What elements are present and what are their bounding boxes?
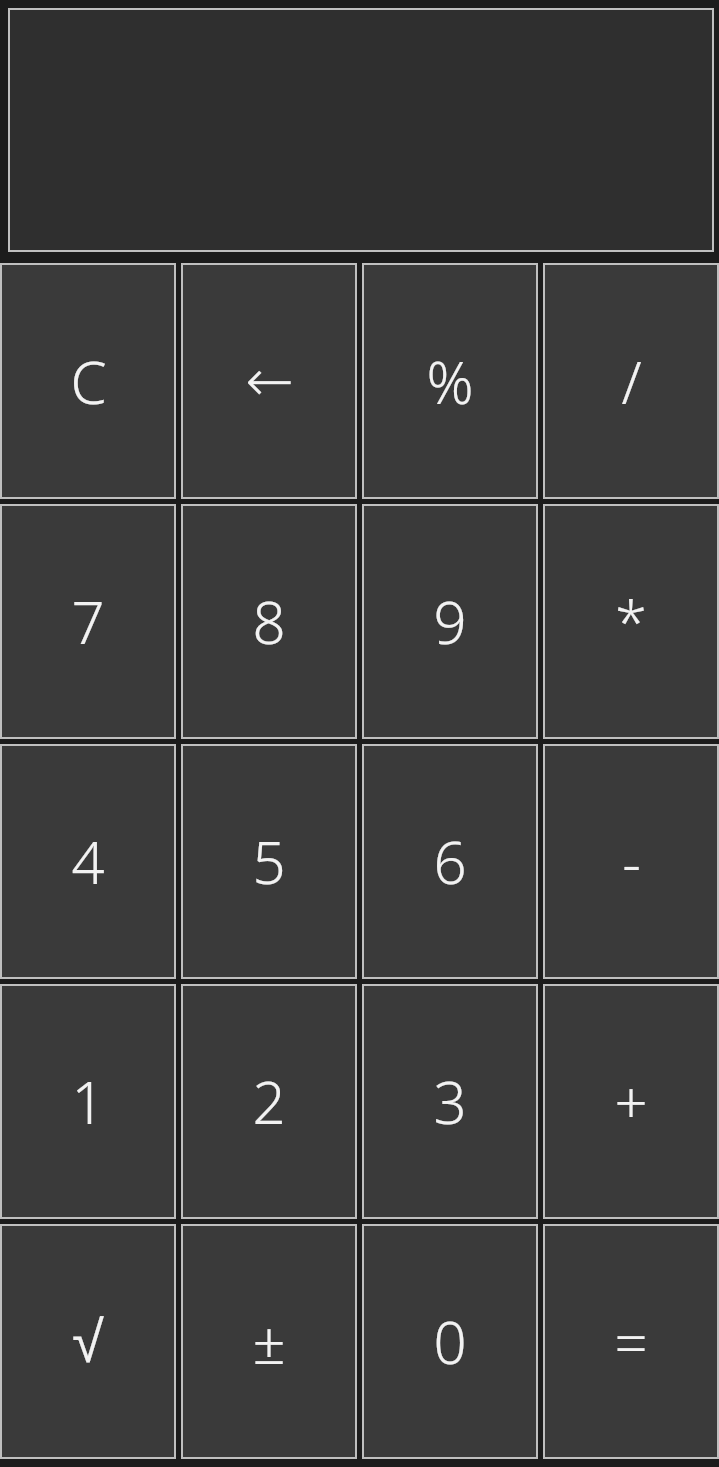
staticText: √ — [72, 1309, 104, 1374]
button[interactable]: Clear — [0, 263, 176, 499]
staticText: + — [614, 1062, 648, 1141]
staticText: 9 — [433, 582, 467, 661]
button[interactable]: 5 — [181, 744, 357, 979]
staticText: 4 — [71, 822, 105, 901]
button[interactable]: 2 — [181, 984, 357, 1219]
staticText: * — [615, 582, 647, 661]
button[interactable]: 1 — [0, 984, 176, 1219]
button[interactable]: 4 — [0, 744, 176, 979]
button[interactable]: - — [543, 744, 719, 979]
staticText: 0 — [433, 1302, 467, 1381]
button[interactable]: Backspace — [181, 263, 357, 499]
button[interactable]: = — [543, 1224, 719, 1459]
button[interactable]: 0 — [362, 1224, 538, 1459]
button[interactable]: * — [543, 504, 719, 739]
staticText: - — [622, 822, 641, 901]
button[interactable]: % — [362, 263, 538, 499]
staticText: 2 — [252, 1062, 286, 1141]
staticText: C — [70, 342, 107, 421]
staticText: ← — [245, 347, 294, 415]
staticText: 1 — [71, 1062, 105, 1141]
staticText: / — [621, 342, 642, 421]
button[interactable]: / — [543, 263, 719, 499]
button[interactable]: + — [543, 984, 719, 1219]
button[interactable]: 6 — [362, 744, 538, 979]
staticText: ± — [252, 1302, 286, 1381]
staticText: 6 — [433, 822, 467, 901]
staticText: % — [426, 342, 474, 421]
staticText: 3 — [433, 1062, 467, 1141]
button[interactable]: 8 — [181, 504, 357, 739]
staticText: 8 — [252, 582, 286, 661]
button[interactable]: Plus minus — [181, 1224, 357, 1459]
staticText: 5 — [252, 822, 286, 901]
button[interactable]: 7 — [0, 504, 176, 739]
button[interactable]: 9 — [362, 504, 538, 739]
staticText: 7 — [71, 582, 105, 661]
staticText: = — [614, 1302, 648, 1381]
button[interactable]: 3 — [362, 984, 538, 1219]
button[interactable]: Square root — [0, 1224, 176, 1459]
button[interactable] — [8, 8, 714, 252]
